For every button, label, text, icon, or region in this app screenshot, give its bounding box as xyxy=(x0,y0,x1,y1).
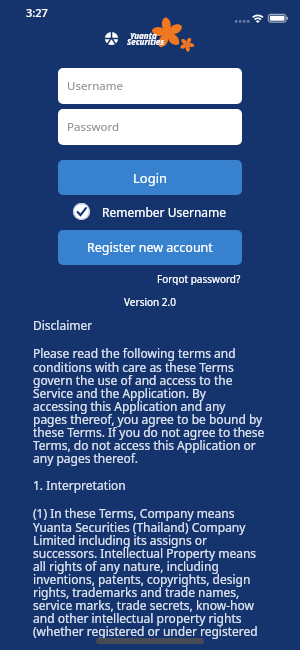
button[interactable]: Forgot password? xyxy=(157,272,241,285)
staticText: Password xyxy=(67,119,120,135)
staticText: Register new account xyxy=(87,239,213,256)
button[interactable]: Remember Username xyxy=(73,203,227,220)
staticText: Username xyxy=(67,78,123,94)
staticText: 1. Interpretation xyxy=(33,477,126,493)
staticText: Securities xyxy=(127,36,165,47)
button[interactable]: Username xyxy=(58,68,242,104)
staticText: (1) In these Terms, Company means Yuanta… xyxy=(33,505,258,639)
staticText: Disclaimer xyxy=(33,317,93,333)
staticText: Please read the following terms and cond… xyxy=(33,345,265,466)
button[interactable]: Password xyxy=(58,109,242,145)
staticText: Login xyxy=(133,169,168,187)
staticText: Yuanta xyxy=(130,30,157,41)
staticText: Version 2.0 xyxy=(0,295,300,309)
button[interactable]: Register new account xyxy=(58,230,242,265)
staticText: 3:27 xyxy=(26,5,48,20)
staticText: Remember Username xyxy=(102,204,227,220)
button[interactable]: Login xyxy=(58,160,242,195)
